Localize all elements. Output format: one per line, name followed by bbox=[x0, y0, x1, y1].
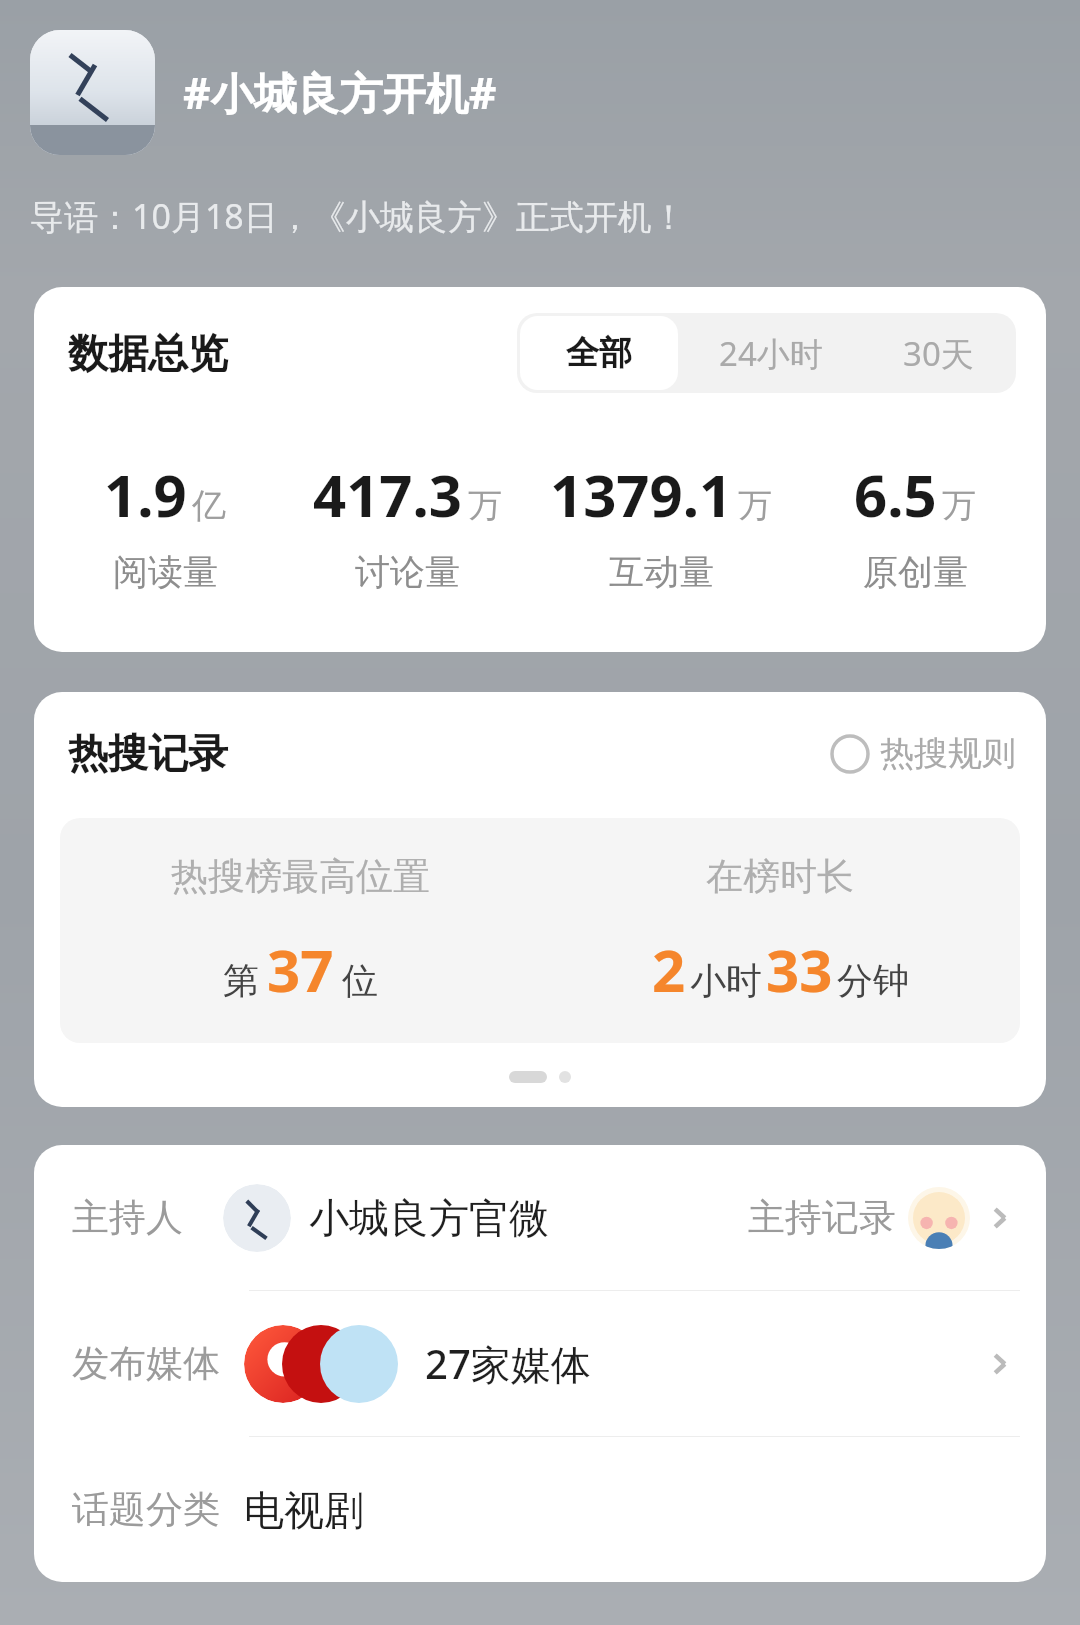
staticText: 第 bbox=[223, 958, 259, 1003]
button[interactable]: 30天 bbox=[861, 313, 1016, 393]
button[interactable]: 发布媒体 bbox=[34, 1291, 1046, 1436]
button[interactable]: 全部 bbox=[520, 316, 678, 390]
staticText: 亿 bbox=[192, 484, 226, 527]
staticText: 1379.1 bbox=[550, 455, 733, 534]
button[interactable]: 话题分类 bbox=[34, 1437, 1046, 1582]
staticText: 6.5 bbox=[854, 455, 937, 534]
staticText: 小时 bbox=[690, 958, 762, 1003]
staticText: 27家媒体 bbox=[425, 1336, 591, 1391]
button[interactable]: 主持人 bbox=[34, 1145, 1046, 1290]
staticText: 1.9 bbox=[104, 455, 187, 534]
button[interactable]: 24小时 bbox=[681, 313, 861, 393]
staticText: 万 bbox=[942, 484, 976, 527]
other: More bbox=[980, 1344, 1020, 1384]
staticText: 位 bbox=[342, 958, 378, 1003]
staticText: 热搜记录 bbox=[68, 728, 228, 778]
button[interactable]: 热搜规则 bbox=[830, 732, 1016, 775]
staticText: 33 bbox=[766, 930, 833, 1009]
staticText: 主持人 bbox=[72, 1194, 183, 1241]
staticText: 话题分类 bbox=[72, 1486, 220, 1533]
staticText: 电视剧 bbox=[244, 1485, 364, 1535]
staticText: 在榜时长 bbox=[706, 853, 854, 900]
staticText: #小城良方开机# bbox=[183, 63, 497, 122]
staticText: 互动量 bbox=[609, 550, 714, 594]
staticText: 小城良方官微 bbox=[309, 1193, 549, 1243]
staticText: 主持记录 bbox=[748, 1194, 896, 1241]
staticText: 原创量 bbox=[863, 550, 968, 594]
staticText: 发布媒体 bbox=[72, 1340, 220, 1387]
staticText: 分钟 bbox=[837, 958, 909, 1003]
staticText: 417.3 bbox=[313, 455, 463, 534]
staticText: 数据总览 bbox=[68, 328, 228, 378]
staticText: 全部 bbox=[566, 332, 632, 374]
staticText: 讨论量 bbox=[355, 550, 460, 594]
staticText: 30天 bbox=[903, 331, 974, 376]
staticText: 2 bbox=[652, 930, 686, 1009]
other: More bbox=[980, 1198, 1020, 1238]
staticText: 导语：10月18日，《小城良方》正式开机！ bbox=[30, 193, 686, 239]
staticText: 37 bbox=[267, 930, 334, 1009]
staticText: 24小时 bbox=[719, 331, 823, 376]
staticText: 万 bbox=[738, 484, 772, 527]
staticText: 热搜规则 bbox=[880, 732, 1016, 775]
staticText: 阅读量 bbox=[113, 550, 218, 594]
button[interactable]: Topic avatar bbox=[30, 30, 155, 155]
staticText: 热搜榜最高位置 bbox=[171, 853, 430, 900]
staticText: 万 bbox=[468, 484, 502, 527]
